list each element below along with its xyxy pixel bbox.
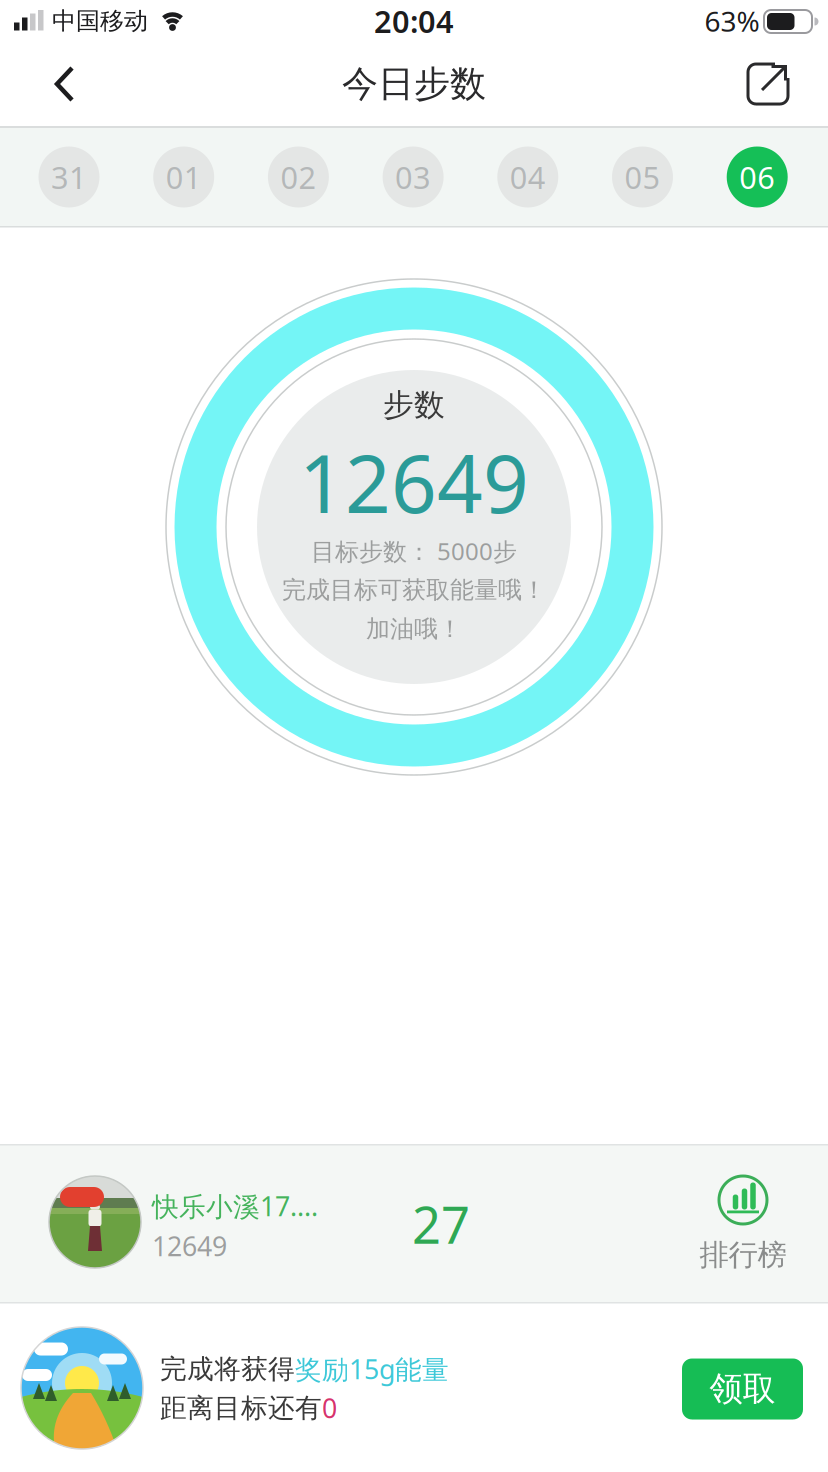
staticText: 步数 bbox=[383, 386, 445, 424]
button[interactable]: 04 bbox=[493, 142, 563, 212]
button[interactable]: 03 bbox=[378, 142, 448, 212]
staticText: 距离目标还有 bbox=[160, 1392, 322, 1424]
button[interactable]: Back bbox=[20, 40, 108, 128]
staticText: 奖励15g能量 bbox=[295, 1351, 449, 1387]
staticText: 63% bbox=[704, 2, 759, 40]
staticText: 完成将获得 bbox=[160, 1353, 295, 1385]
staticText: 02 bbox=[280, 157, 316, 197]
button[interactable]: 排行榜 bbox=[683, 1145, 803, 1285]
button[interactable]: 02 bbox=[263, 142, 333, 212]
staticText: 12649 bbox=[299, 429, 529, 535]
button[interactable]: 05 bbox=[607, 142, 677, 212]
staticText: 领取 bbox=[709, 1368, 775, 1409]
staticText: 加油哦！ bbox=[366, 614, 462, 644]
staticText: 20:04 bbox=[374, 1, 454, 41]
staticText: 04 bbox=[510, 157, 546, 197]
staticText: 今日步数 bbox=[342, 62, 486, 106]
staticText: 0 bbox=[322, 1390, 337, 1426]
staticText: 目标步数： 5000步 bbox=[311, 535, 517, 567]
staticText: 27 bbox=[412, 1190, 470, 1258]
staticText: 完成目标可获取能量哦！ bbox=[282, 575, 546, 605]
button[interactable]: 06 bbox=[722, 142, 792, 212]
staticText: 05 bbox=[624, 157, 660, 197]
button[interactable]: 领取 bbox=[682, 1358, 803, 1419]
button[interactable]: 01 bbox=[149, 142, 219, 212]
button[interactable]: 31 bbox=[34, 142, 104, 212]
staticText: 12649 bbox=[152, 1228, 227, 1264]
staticText: 31 bbox=[51, 157, 87, 197]
staticText: 中国移动 bbox=[52, 6, 148, 36]
staticText: 快乐小溪17.... bbox=[152, 1188, 318, 1224]
staticText: 06 bbox=[739, 157, 775, 197]
staticText: 排行榜 bbox=[699, 1237, 786, 1273]
button[interactable]: Share bbox=[724, 40, 812, 128]
staticText: 03 bbox=[395, 157, 431, 197]
staticText: 01 bbox=[166, 157, 202, 197]
